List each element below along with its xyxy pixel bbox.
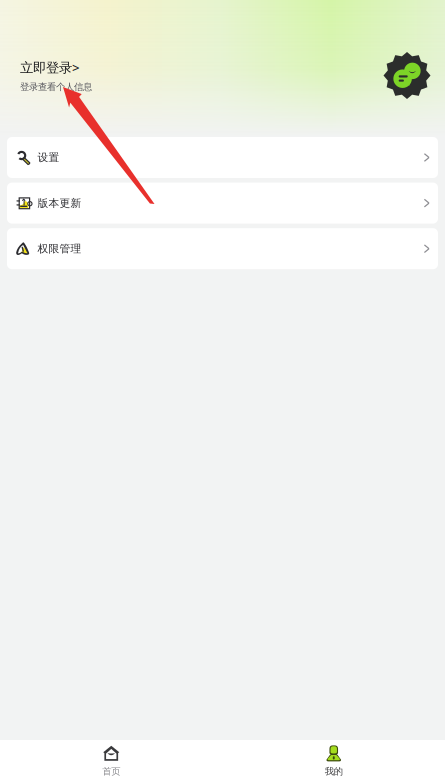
- staticText: 版本更新: [37, 196, 81, 210]
- staticText: 设置: [37, 151, 59, 164]
- button[interactable]: 版本更新: [7, 183, 438, 224]
- staticText: 权限管理: [37, 242, 81, 255]
- button[interactable]: 权限管理: [7, 228, 438, 269]
- staticText: 首页: [102, 766, 120, 777]
- staticText: 立即登录>: [20, 58, 80, 76]
- staticText: 登录查看个人信息: [20, 81, 92, 93]
- staticText: 我的: [325, 766, 343, 777]
- button[interactable]: 我的: [222, 746, 445, 777]
- button[interactable]: 首页: [0, 746, 222, 777]
- button[interactable]: 设置: [7, 137, 438, 178]
